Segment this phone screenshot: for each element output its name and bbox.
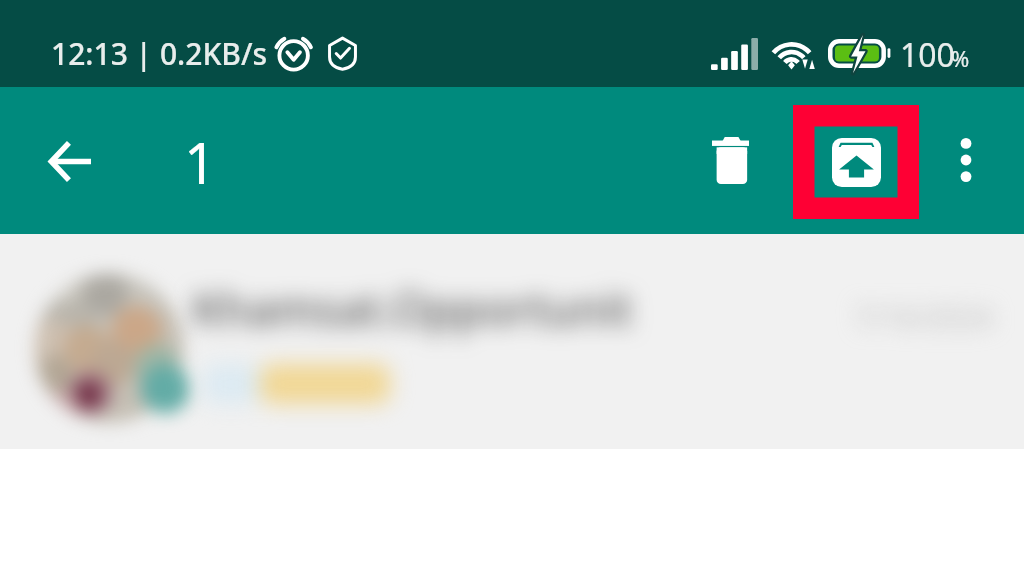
button[interactable]: Khamsat.Opportunit (0, 234, 1024, 449)
button[interactable]: Delete (690, 120, 770, 200)
button[interactable]: Unarchive (793, 105, 919, 219)
staticText: 1 (184, 124, 217, 200)
staticText: 12:13 | 0.2KB/s (51, 33, 268, 74)
button[interactable]: Back (29, 120, 109, 200)
button[interactable]: More options (926, 120, 1006, 200)
staticText: Khamsat.Opportunit (192, 278, 633, 339)
staticText: 100 (900, 33, 955, 77)
staticText: % (951, 43, 970, 73)
